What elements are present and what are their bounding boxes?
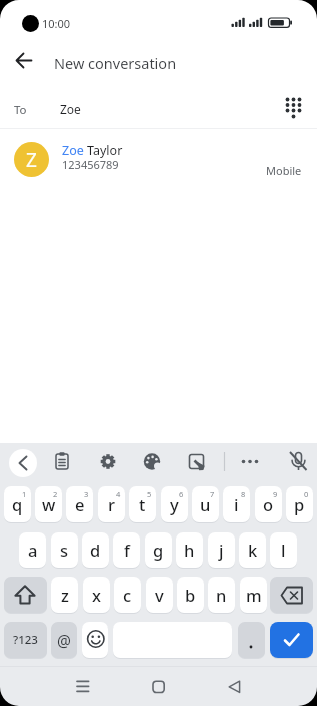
staticText: u	[200, 493, 211, 515]
staticText: z	[61, 584, 69, 606]
button[interactable]: h	[176, 532, 203, 568]
button[interactable]	[35, 486, 62, 522]
button[interactable]: s	[51, 532, 78, 568]
staticText: Z	[26, 147, 37, 173]
staticText: q	[12, 493, 23, 515]
button[interactable]	[4, 486, 31, 522]
button[interactable]: b	[177, 577, 204, 613]
staticText: b	[185, 584, 196, 606]
staticText: 8	[241, 489, 246, 499]
button[interactable]	[8, 45, 40, 77]
staticText: d	[90, 539, 101, 561]
staticText: m	[246, 584, 262, 606]
staticText: v	[155, 584, 164, 606]
staticText: g	[153, 539, 164, 561]
staticText: 3	[84, 489, 89, 499]
button[interactable]: a	[19, 532, 46, 568]
button[interactable]	[192, 486, 219, 522]
button[interactable]	[270, 577, 313, 613]
staticText: 6	[179, 489, 184, 499]
button[interactable]	[66, 486, 93, 522]
button[interactable]	[66, 671, 98, 703]
staticText: 5	[147, 489, 152, 499]
button[interactable]: l	[270, 532, 297, 568]
staticText: Zoe Taylor	[62, 142, 123, 159]
staticText: p	[294, 493, 305, 515]
staticText: 10:00	[42, 16, 71, 31]
button[interactable]: c	[114, 577, 141, 613]
staticText: r	[108, 493, 115, 515]
staticText: To	[14, 102, 27, 118]
button[interactable]: d	[82, 532, 109, 568]
button[interactable]	[255, 486, 282, 522]
button[interactable]: ?123	[4, 622, 47, 658]
button[interactable]	[142, 671, 174, 703]
button[interactable]: g	[145, 532, 172, 568]
staticText: Mobile	[266, 163, 302, 178]
button[interactable]: m	[240, 577, 267, 613]
button[interactable]	[223, 486, 250, 522]
button[interactable]	[9, 449, 37, 477]
button[interactable]	[161, 486, 188, 522]
staticText: 9	[273, 489, 278, 499]
button[interactable]: j	[208, 532, 235, 568]
button[interactable]	[94, 448, 122, 476]
button[interactable]	[129, 486, 156, 522]
staticText: f	[124, 539, 130, 561]
button[interactable]: x	[83, 577, 110, 613]
staticText: a	[28, 539, 38, 561]
button[interactable]: z	[51, 577, 78, 613]
staticText: ?123	[13, 632, 38, 648]
staticText: New conversation	[54, 53, 177, 73]
button[interactable]: Z	[0, 133, 317, 185]
staticText: s	[60, 539, 69, 561]
staticText: c	[123, 584, 132, 606]
staticText: y	[170, 493, 179, 515]
button[interactable]	[138, 448, 166, 476]
staticText: w	[42, 493, 56, 515]
button[interactable]: k	[239, 532, 266, 568]
button[interactable]: f	[113, 532, 140, 568]
staticText: o	[263, 493, 274, 515]
button[interactable]	[236, 448, 264, 476]
staticText: @	[57, 630, 71, 651]
button[interactable]: v	[146, 577, 173, 613]
staticText: 2	[53, 489, 58, 499]
staticText: 0	[304, 489, 309, 499]
button[interactable]	[98, 486, 125, 522]
staticText: i	[234, 493, 239, 515]
staticText: l	[281, 539, 286, 561]
staticText: 4	[116, 489, 121, 499]
staticText: k	[248, 539, 258, 561]
staticText: n	[216, 584, 227, 606]
button[interactable]	[218, 671, 250, 703]
staticText: e	[75, 493, 85, 515]
button[interactable]	[286, 486, 313, 522]
button[interactable]	[238, 622, 265, 658]
button[interactable]	[182, 448, 210, 476]
button[interactable]	[281, 96, 306, 121]
button[interactable]	[284, 448, 312, 476]
staticText: 1	[22, 489, 27, 499]
button[interactable]	[48, 448, 76, 476]
button[interactable]	[270, 622, 313, 658]
staticText: t	[139, 493, 146, 515]
staticText: j	[219, 539, 224, 561]
staticText: x	[92, 584, 101, 606]
button[interactable]	[82, 622, 108, 658]
button[interactable]	[4, 577, 47, 613]
button[interactable]: @	[51, 622, 77, 658]
button[interactable]: n	[208, 577, 235, 613]
staticText: Zoe	[60, 101, 81, 117]
staticText: 123456789	[62, 157, 119, 172]
staticText: h	[184, 539, 195, 561]
staticText: 7	[210, 489, 215, 499]
